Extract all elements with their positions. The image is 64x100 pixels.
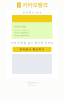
staticText: 문의사항은 고객센터로 연락주세요. [14,35,29,36]
staticText: 안내사항 [14,25,26,28]
button[interactable]: 전자문서 확인하기 [12,47,51,52]
staticText: 아래 버튼을 눌러 확인해 주세요 [10,41,53,45]
staticText: 카카오뱅크 [22,2,47,8]
staticText: 전자문서 확인하기 [19,48,44,51]
staticText: 본 전자문서는 고객님의 요청에 따라 [14,29,29,31]
staticText: (주)카카오뱅크 [29,84,35,86]
staticText: 발송되었습니다. 내용을 확인하시고 [14,32,29,34]
staticText: 본 메일은 발신전용입니다 [26,82,37,84]
staticText: 전자문서 안내 [22,11,41,14]
